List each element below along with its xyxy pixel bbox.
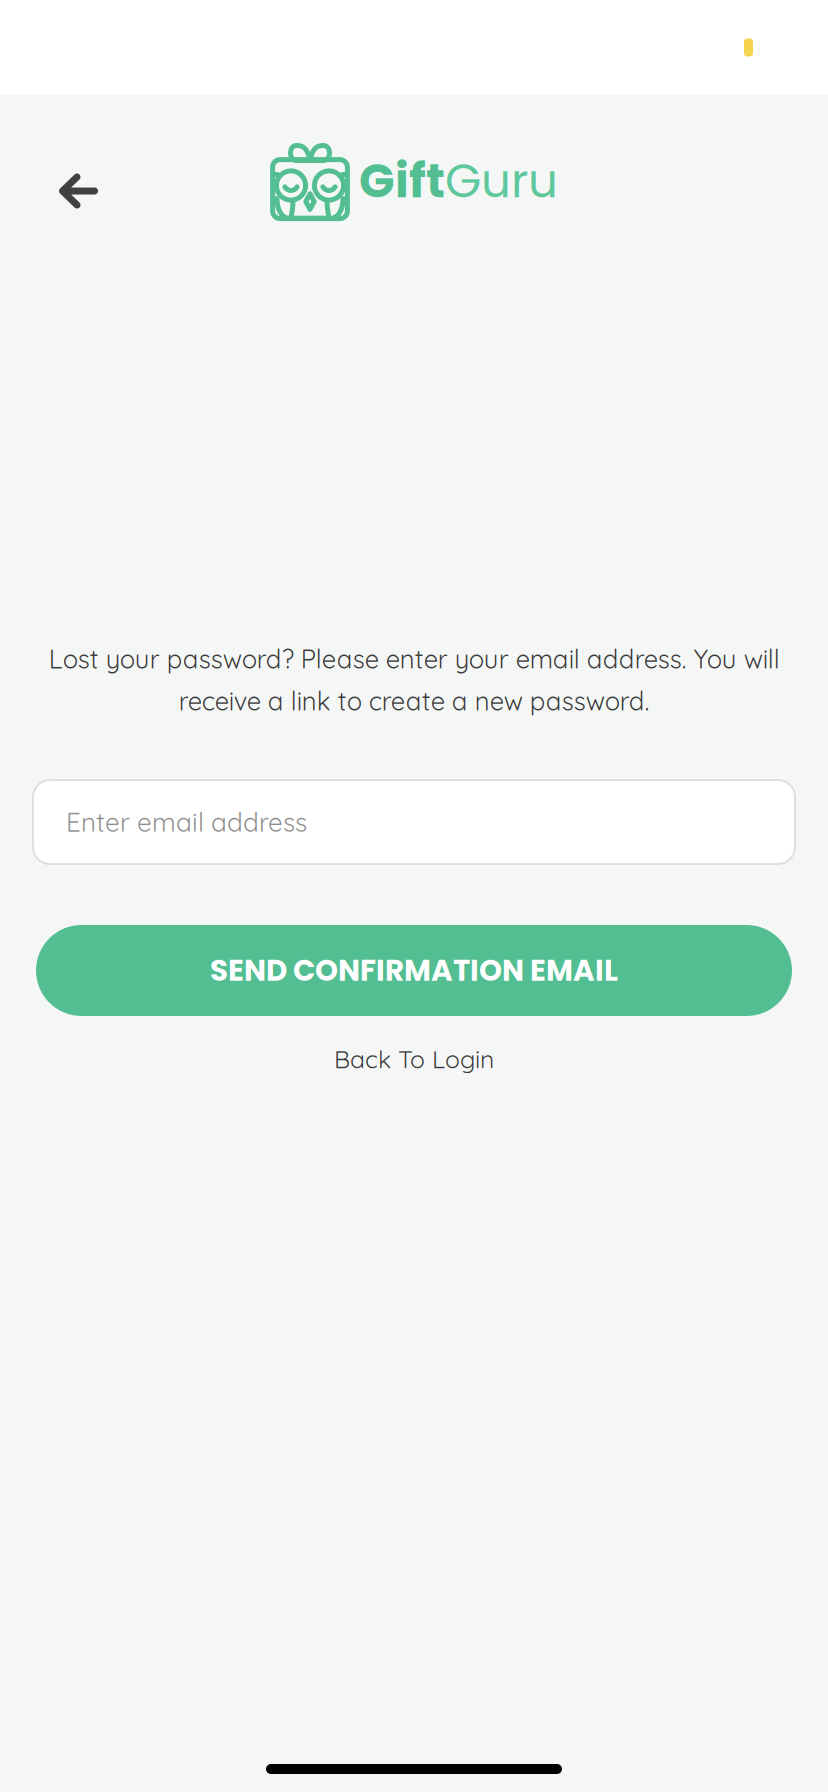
button[interactable]: Back (38, 141, 118, 221)
staticText: Enter email address (66, 806, 307, 838)
staticText: Gift (359, 148, 445, 214)
button[interactable]: SEND CONFIRMATION EMAIL (36, 925, 792, 1016)
staticText: Back To Login (334, 1044, 494, 1074)
staticText: Guru (445, 148, 558, 214)
button[interactable]: Back To Login (284, 1035, 544, 1083)
staticText: SEND CONFIRMATION EMAIL (210, 950, 618, 991)
staticText: Lost your password? Please enter your em… (48, 643, 779, 717)
